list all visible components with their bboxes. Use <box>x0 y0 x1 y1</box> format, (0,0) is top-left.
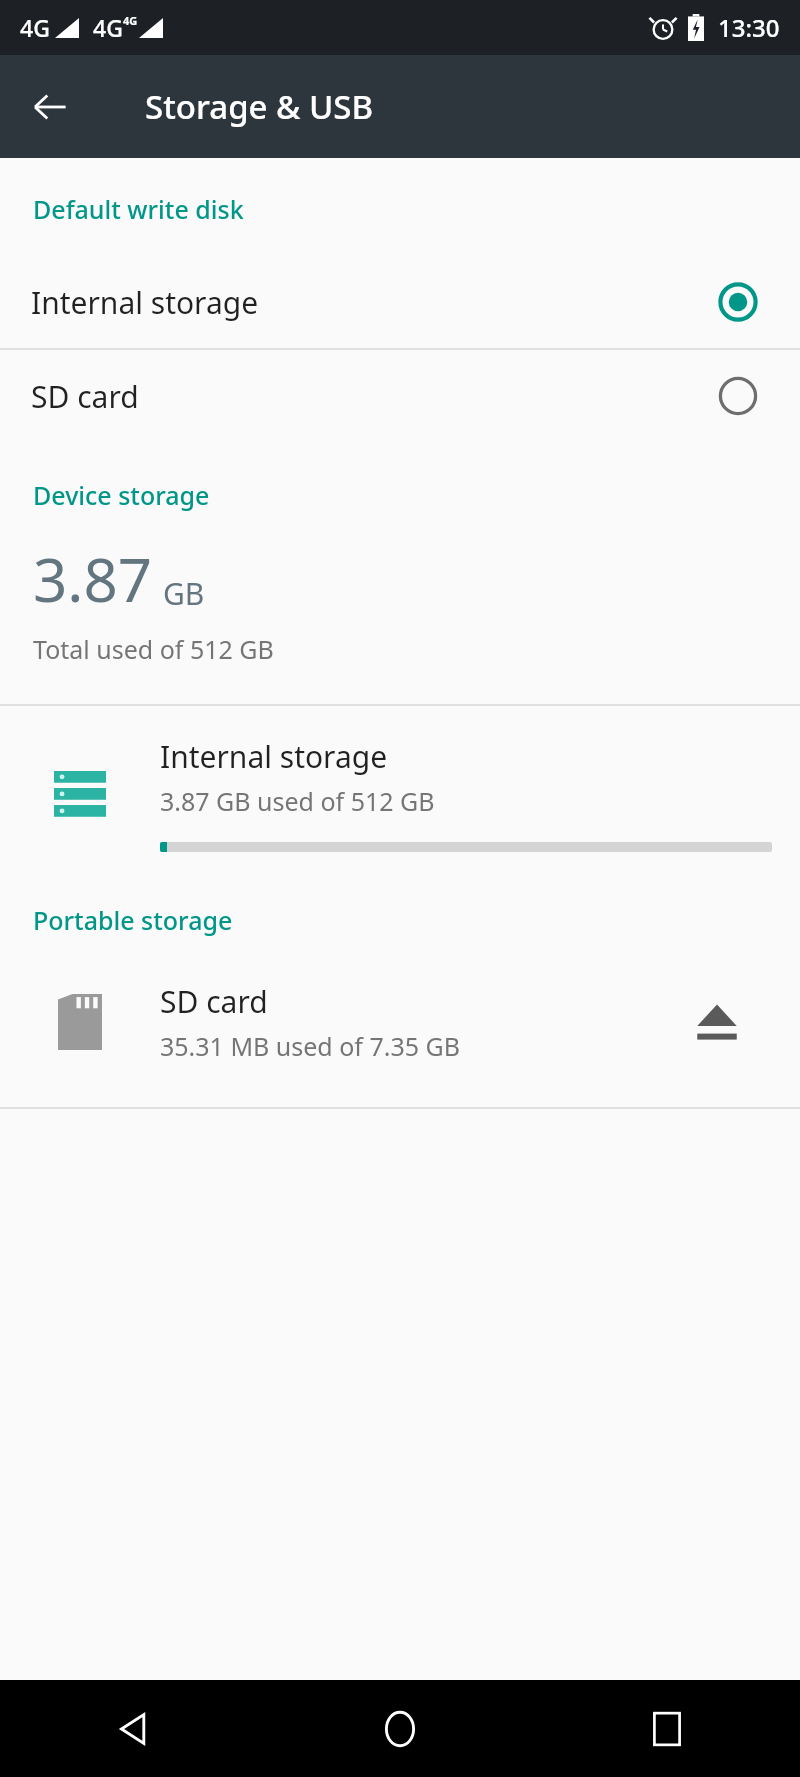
staticText: Device storage <box>33 478 210 512</box>
button[interactable]: SD card <box>0 350 800 442</box>
staticText: 4G <box>93 12 123 43</box>
button[interactable]: Back <box>0 1680 266 1777</box>
staticText: SD card <box>160 981 268 1022</box>
button[interactable]: Home <box>266 1680 533 1777</box>
staticText: Total used of 512 GB <box>33 632 274 666</box>
staticText: GB <box>163 573 205 614</box>
staticText: 13:30 <box>718 11 780 44</box>
staticText: Default write disk <box>33 192 244 226</box>
staticText: 4G <box>123 13 138 28</box>
staticText: 35.31 MB used of 7.35 GB <box>160 1029 461 1063</box>
button[interactable]: Recent apps <box>533 1680 800 1777</box>
button[interactable]: Back <box>18 75 82 139</box>
button[interactable]: Internal storage <box>0 256 800 348</box>
button[interactable]: Eject SD card <box>672 977 762 1067</box>
button[interactable]: Internal storage <box>0 706 800 881</box>
staticText: 3.87 <box>33 538 153 620</box>
staticText: Portable storage <box>33 903 233 937</box>
staticText: Internal storage <box>31 282 716 323</box>
button[interactable]: SD card <box>0 937 800 1107</box>
staticText: 3.87 GB used of 512 GB <box>160 784 435 818</box>
staticText: SD card <box>31 376 716 417</box>
staticText: Internal storage <box>160 736 388 777</box>
staticText: Storage & USB <box>145 84 374 129</box>
staticText: 4G <box>20 12 50 43</box>
